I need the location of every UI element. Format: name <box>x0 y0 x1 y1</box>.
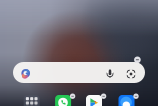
button[interactable]: Messenger <box>118 95 134 106</box>
button[interactable]: Play Store <box>86 95 102 106</box>
button[interactable]: WhatsApp <box>55 95 71 106</box>
button[interactable]: App folder <box>24 95 40 106</box>
button[interactable]: Google search <box>13 62 145 83</box>
